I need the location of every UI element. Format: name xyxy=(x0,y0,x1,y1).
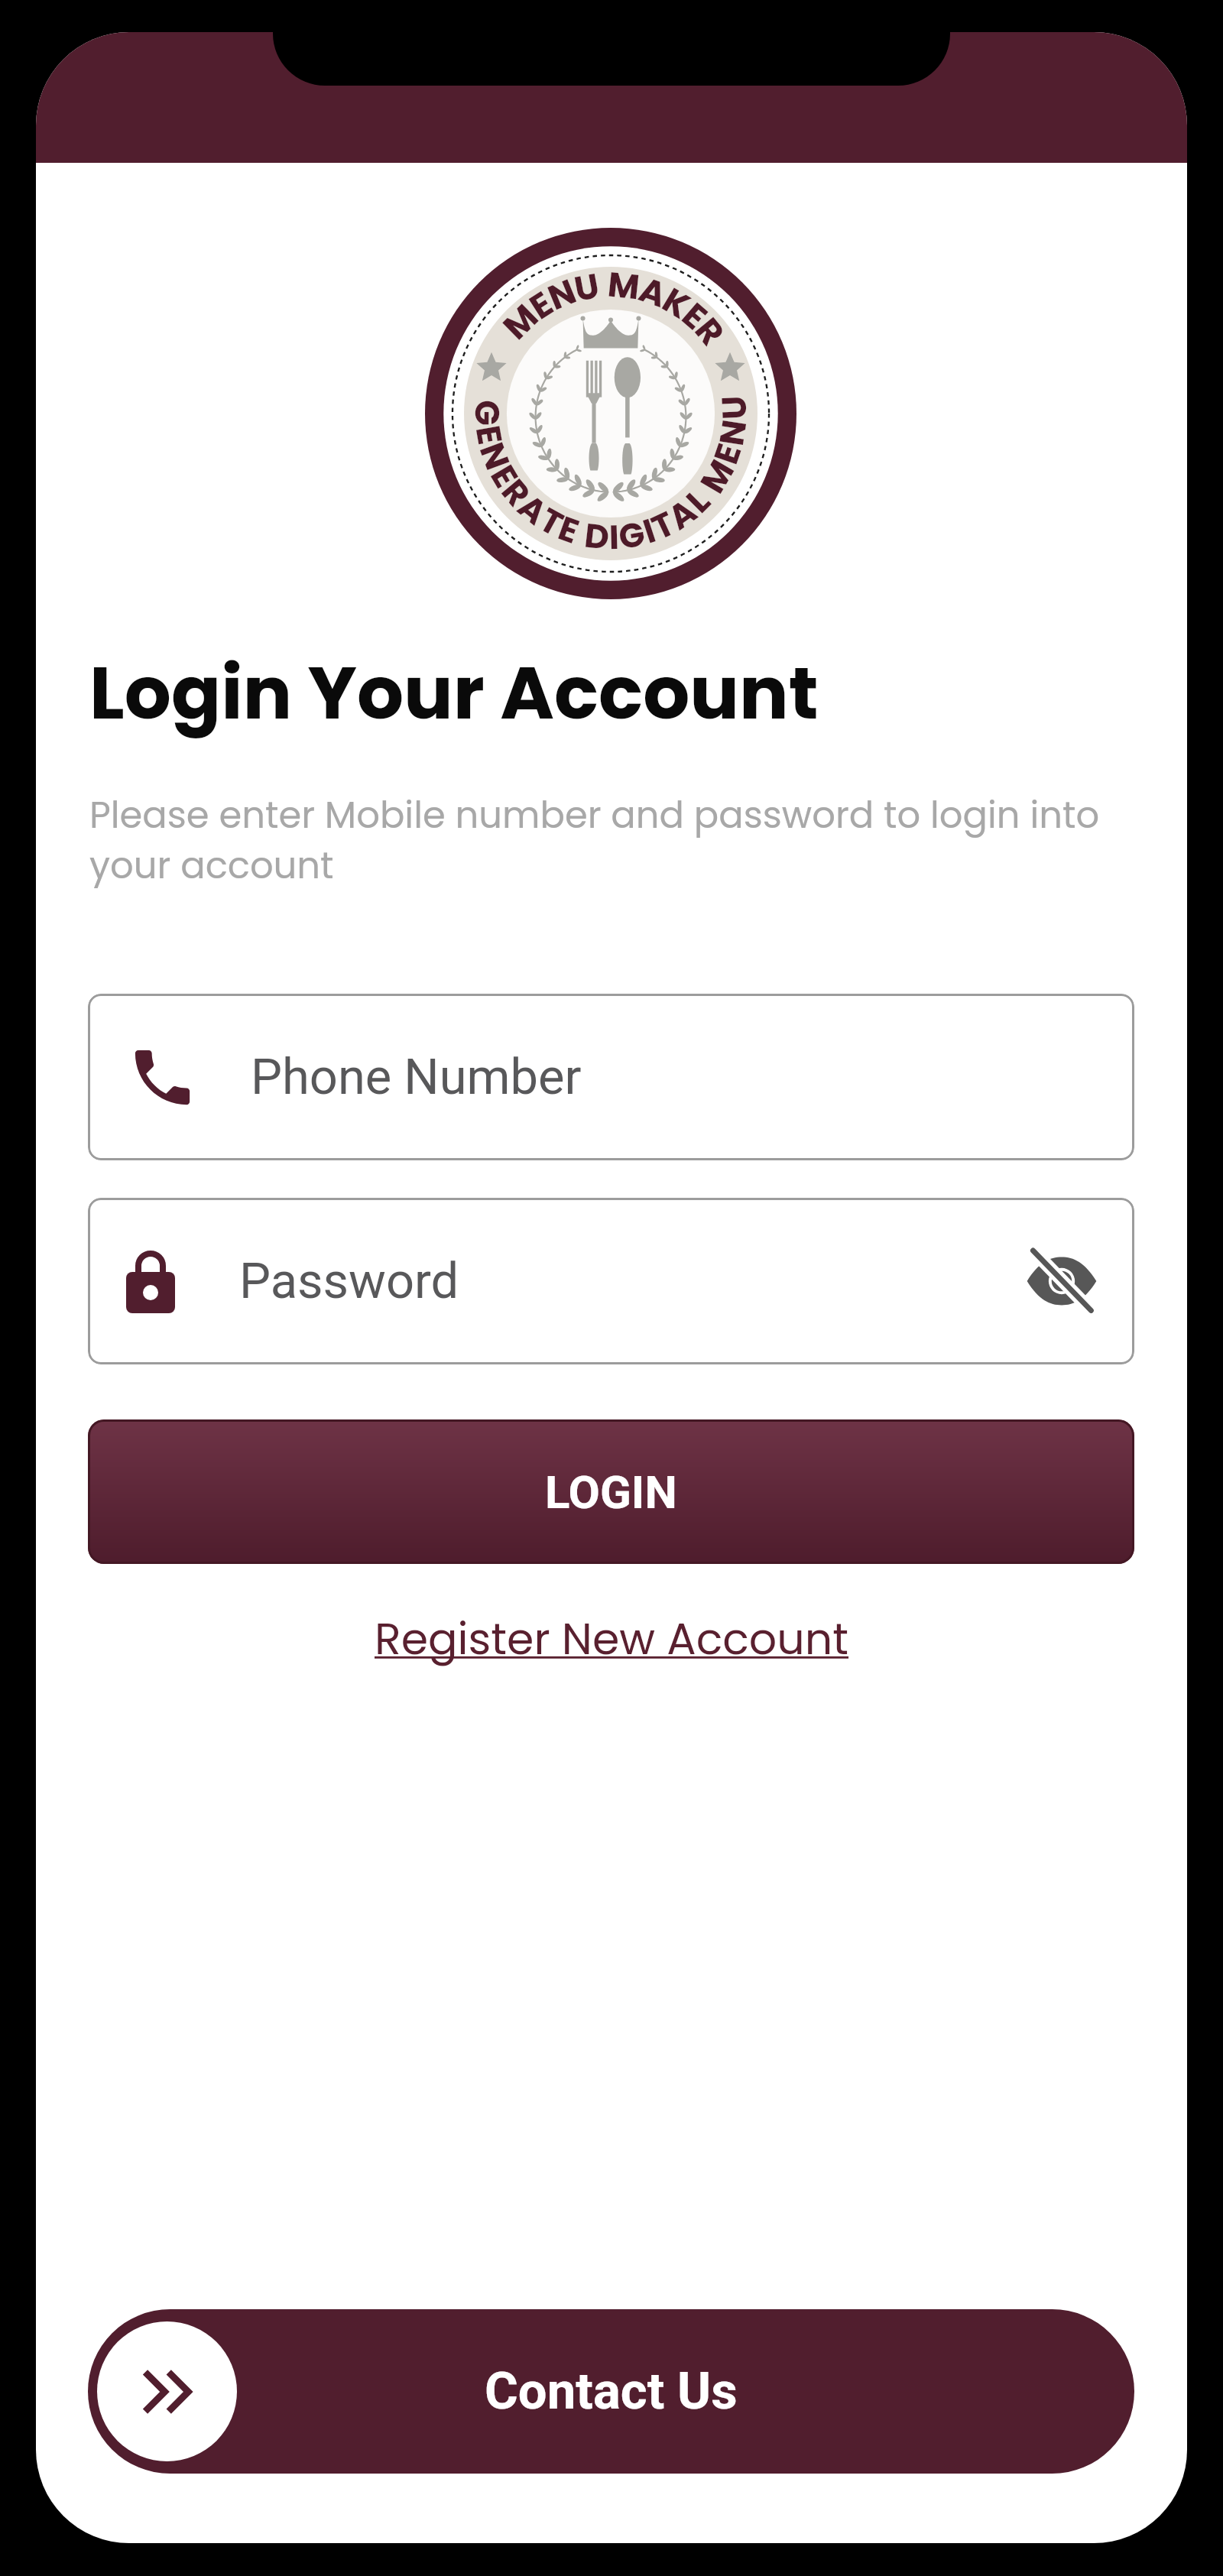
staticText: LOGIN xyxy=(545,1465,677,1519)
staticText: Password xyxy=(239,1252,459,1310)
button[interactable]: Phone Number xyxy=(88,994,1134,1160)
button[interactable]: Contact Us xyxy=(88,2309,1134,2474)
button[interactable]: Register New Account xyxy=(375,1608,849,1669)
staticText: Contact Us xyxy=(485,2361,738,2422)
other: Open contact options xyxy=(97,2321,237,2461)
staticText: Phone Number xyxy=(251,1048,582,1106)
button[interactable]: LOGIN xyxy=(88,1419,1134,1564)
staticText: Please enter Mobile number and password … xyxy=(89,790,1160,891)
button[interactable]: Password xyxy=(88,1198,1134,1364)
button[interactable]: Show password xyxy=(1012,1231,1111,1331)
staticText: Login Your Account xyxy=(89,641,819,744)
